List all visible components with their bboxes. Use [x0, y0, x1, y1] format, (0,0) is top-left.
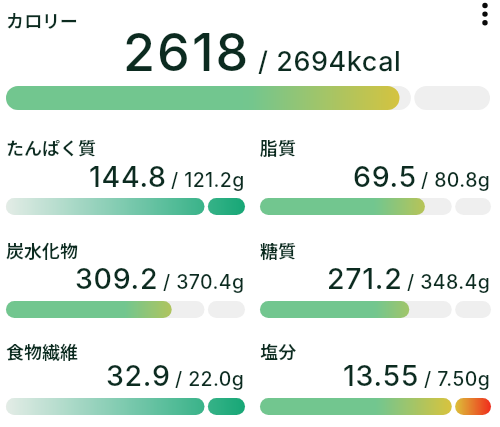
staticText: 32.9: [106, 358, 171, 392]
staticText: / 80.8g: [421, 168, 491, 192]
staticText: / 22.0g: [175, 367, 245, 391]
button[interactable]: [260, 198, 491, 215]
staticText: 144.8: [89, 159, 167, 193]
staticText: 脂質: [260, 134, 296, 160]
staticText: / 370.4g: [163, 270, 245, 294]
staticText: / 348.4g: [407, 270, 491, 294]
staticText: 塩分: [260, 338, 296, 364]
button[interactable]: [6, 301, 245, 318]
staticText: 糖質: [260, 237, 296, 263]
button[interactable]: [6, 86, 490, 110]
button[interactable]: [6, 198, 245, 215]
staticText: たんぱく質: [6, 134, 96, 160]
button[interactable]: [6, 398, 245, 415]
button[interactable]: More options: [472, 0, 498, 26]
staticText: / 7.50g: [424, 367, 491, 391]
staticText: 13.55: [343, 358, 420, 392]
staticText: 食物繊維: [6, 338, 78, 364]
button[interactable]: [260, 398, 491, 415]
staticText: 炭水化物: [6, 237, 78, 263]
staticText: 309.2: [75, 261, 159, 295]
staticText: / 121.2g: [171, 168, 245, 192]
staticText: 271.2: [327, 261, 403, 295]
staticText: 69.5: [353, 159, 417, 193]
staticText: カロリー: [6, 7, 78, 33]
staticText: 2618: [123, 21, 251, 84]
button[interactable]: [260, 301, 491, 318]
staticText: / 2694kcal: [258, 45, 402, 78]
